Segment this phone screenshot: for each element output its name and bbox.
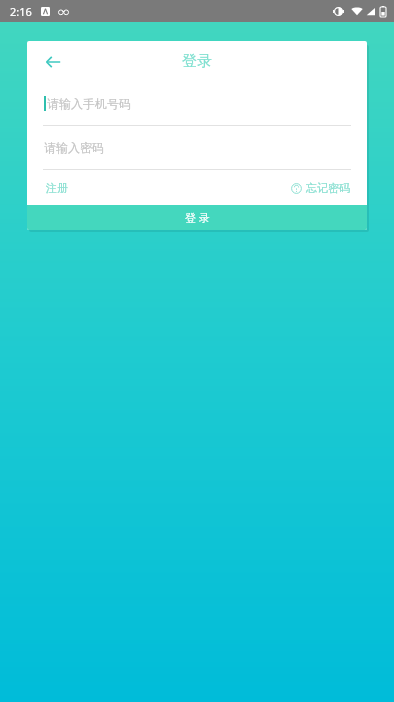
button[interactable]: 登 录 — [27, 205, 367, 230]
button[interactable]: 注册 — [44, 177, 70, 199]
staticText: 请输入手机号码 — [47, 96, 131, 111]
button[interactable]: 请输入手机号码 — [27, 82, 367, 125]
button[interactable]: 请输入密码 — [27, 126, 367, 169]
staticText: 登 录 — [185, 210, 210, 225]
staticText: 2:16 — [10, 4, 32, 19]
staticText: 请输入密码 — [44, 140, 104, 155]
staticText: 注册 — [46, 181, 68, 195]
button[interactable]: 忘记密码 — [289, 177, 352, 199]
staticText: 登录 — [182, 52, 212, 71]
staticText: 忘记密码 — [306, 181, 350, 195]
button[interactable]: Back — [35, 44, 71, 80]
